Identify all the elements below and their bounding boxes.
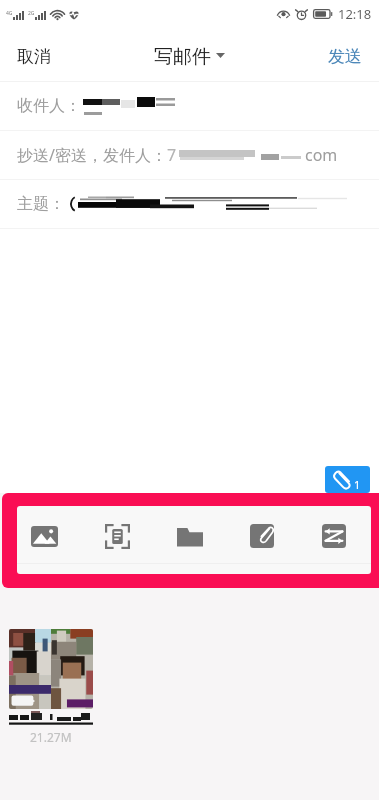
button[interactable]: Attachments	[325, 466, 370, 493]
staticText: 抄送/密送，发件人：	[17, 144, 167, 166]
button[interactable]: 取消	[0, 28, 68, 81]
staticText: 21.27M	[30, 729, 72, 745]
button[interactable]: 收件人：	[0, 82, 379, 130]
staticText: 取消	[17, 46, 51, 67]
button[interactable]: 主题：	[0, 180, 379, 228]
button[interactable]: Scan document	[81, 514, 154, 558]
button[interactable]: 写邮件	[148, 28, 231, 81]
button[interactable]: Transfer file	[298, 514, 370, 558]
staticText: 12:18	[338, 5, 372, 23]
button[interactable]: Insert image	[8, 514, 81, 558]
button[interactable]: Video attachment	[9, 629, 93, 709]
button[interactable]: Files	[154, 514, 226, 558]
staticText: 收件人：	[17, 96, 81, 116]
staticText: 写邮件	[154, 45, 211, 69]
staticText: 1	[354, 477, 361, 492]
button[interactable]: Attach file	[226, 514, 298, 558]
button[interactable]: 发送	[311, 28, 379, 81]
staticText: 2G	[28, 10, 35, 17]
staticText: 主题：	[17, 194, 65, 214]
staticText: 4G	[6, 10, 13, 17]
staticText: com	[305, 144, 338, 166]
button[interactable]: 抄送/密送，发件人：	[0, 131, 379, 179]
staticText: 发送	[328, 46, 362, 67]
staticText: 7	[167, 144, 177, 166]
